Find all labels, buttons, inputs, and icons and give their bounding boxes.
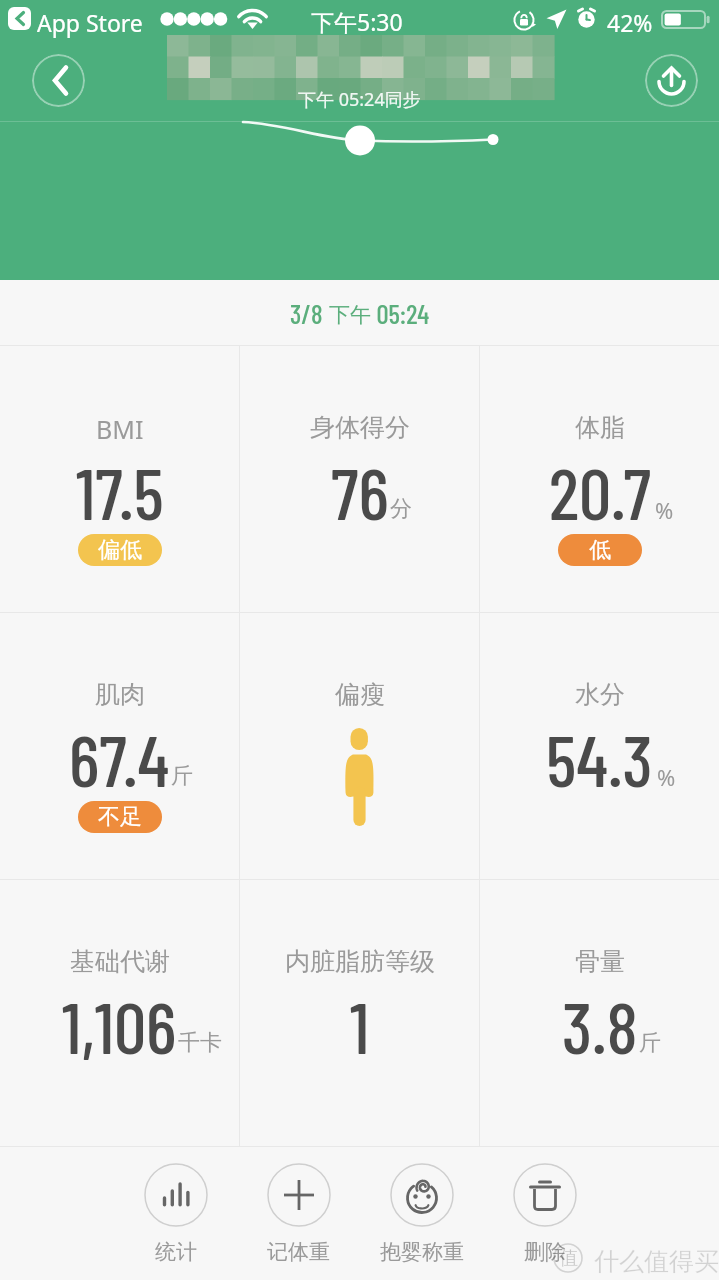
button[interactable]: 骨量: [480, 880, 719, 1146]
staticText: 下午 05:24同步: [298, 87, 421, 112]
staticText: 3.8: [562, 982, 638, 1068]
staticText: 内脏脂肪等级: [285, 946, 435, 977]
button[interactable]: 统计: [114, 1147, 237, 1265]
staticText: 偏低: [98, 536, 142, 564]
button[interactable]: 删除: [483, 1147, 606, 1265]
button[interactable]: 肌肉: [0, 613, 239, 879]
staticText: 分: [390, 495, 412, 523]
staticText: 记体重: [267, 1239, 330, 1265]
staticText: 体脂: [575, 412, 625, 443]
staticText: 42%: [607, 7, 653, 38]
staticText: 水分: [575, 679, 625, 710]
staticText: 千卡: [178, 1029, 222, 1057]
staticText: 低: [589, 536, 611, 564]
button[interactable]: 记体重: [237, 1147, 360, 1265]
staticText: 17.5: [76, 448, 164, 534]
button[interactable]: 内脏脂肪等级: [240, 880, 479, 1146]
staticText: 1,106: [62, 982, 177, 1068]
staticText: %: [657, 762, 676, 792]
button[interactable]: 3/8: [0, 280, 719, 345]
staticText: %: [655, 495, 674, 525]
staticText: 05:24: [371, 297, 430, 329]
button[interactable]: 身体得分: [240, 346, 479, 612]
staticText: 不足: [98, 803, 142, 831]
button[interactable]: Back: [32, 54, 85, 107]
button[interactable]: 抱婴称重: [360, 1147, 483, 1265]
staticText: 骨量: [575, 946, 625, 977]
staticText: 基础代谢: [70, 946, 170, 977]
staticText: 身体得分: [310, 412, 410, 443]
staticText: 抱婴称重: [380, 1239, 464, 1265]
button[interactable]: 基础代谢: [0, 880, 239, 1146]
staticText: 斤: [639, 1029, 661, 1057]
staticText: 肌肉: [95, 679, 145, 710]
staticText: 斤: [171, 762, 193, 790]
staticText: 值: [559, 1246, 578, 1270]
staticText: 1: [350, 982, 370, 1068]
button[interactable]: 水分: [480, 613, 719, 879]
staticText: 偏瘦: [335, 679, 385, 710]
button[interactable]: 体脂: [480, 346, 719, 612]
button[interactable]: 偏瘦: [240, 613, 479, 879]
button[interactable]: BMI: [0, 346, 239, 612]
staticText: App Store: [37, 7, 143, 38]
staticText: 54.3: [546, 715, 653, 801]
staticText: 76: [331, 448, 389, 534]
staticText: 下午: [329, 302, 371, 328]
staticText: 3/8: [290, 297, 329, 329]
staticText: 删除: [524, 1239, 566, 1265]
staticText: 20.7: [549, 448, 651, 534]
button[interactable]: Share: [645, 54, 698, 107]
staticText: 统计: [155, 1239, 197, 1265]
staticText: BMI: [96, 412, 144, 444]
staticText: 67.4: [69, 715, 170, 801]
staticText: 什么值得买: [594, 1246, 719, 1277]
staticText: 下午5:30: [311, 6, 403, 37]
